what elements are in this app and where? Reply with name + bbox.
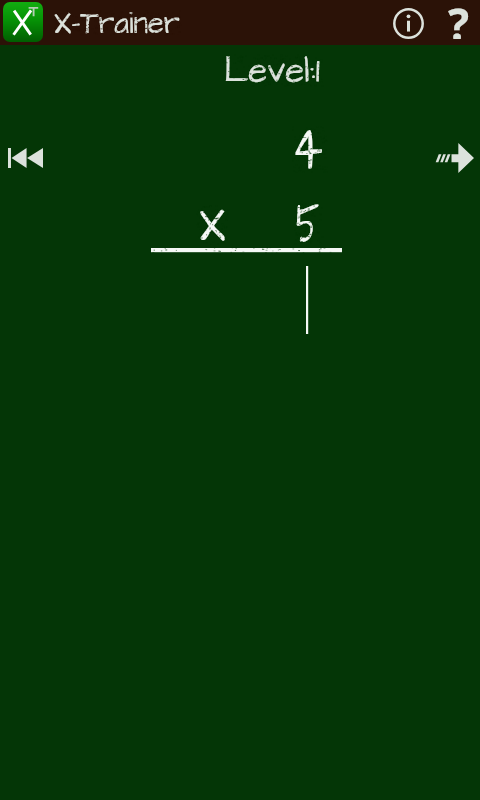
button[interactable]: X-Trainer: [3, 2, 43, 42]
button[interactable]: Previous level: [1, 134, 49, 182]
button[interactable]: Next level: [432, 134, 480, 182]
staticText: Level:1: [224, 44, 320, 98]
button[interactable]: About: [392, 7, 424, 39]
staticText: X-Trainer: [54, 0, 180, 45]
staticText: ?: [448, 0, 469, 39]
staticText: X: [199, 190, 226, 261]
staticText: 4: [292, 102, 323, 195]
staticText: 5: [296, 182, 319, 267]
button[interactable]: Help: [437, 0, 477, 45]
